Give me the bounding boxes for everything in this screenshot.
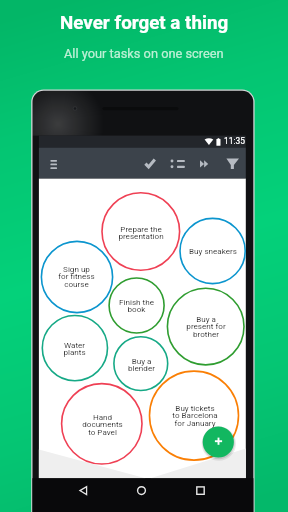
staticText: All your tasks on one screen xyxy=(64,46,224,61)
staticText: Buy sneakers xyxy=(189,246,237,255)
button[interactable]: Add task xyxy=(202,426,234,458)
button[interactable]: Skip xyxy=(202,153,220,171)
button[interactable]: Buy a present for brother xyxy=(167,288,244,365)
staticText: Finish the book xyxy=(119,297,154,314)
staticText: Hand documents to Pavel xyxy=(82,412,123,437)
button[interactable]: Finish the book xyxy=(109,278,164,333)
button[interactable]: Buy a blender xyxy=(114,337,168,391)
staticText: Prepare the presentation xyxy=(118,224,164,241)
staticText: Sign up for fitness course xyxy=(58,264,95,289)
staticText: Never forget a thing xyxy=(60,12,229,34)
button[interactable]: Home xyxy=(132,481,152,500)
staticText: 11:35 xyxy=(224,136,245,146)
button[interactable]: Back xyxy=(74,481,94,500)
button[interactable]: List view xyxy=(170,153,190,171)
staticText: Buy a present for brother xyxy=(186,314,226,339)
button[interactable]: Prepare the presentation xyxy=(102,193,180,271)
button[interactable]: Buy tickets to Barcelona for January xyxy=(150,371,239,460)
staticText: Water plants xyxy=(63,340,86,357)
button[interactable]: Sign up for fitness course xyxy=(41,241,112,312)
button[interactable]: Recents xyxy=(191,481,211,500)
staticText: Buy a blender xyxy=(128,356,155,373)
staticText: Buy tickets to Barcelona for January xyxy=(172,403,218,428)
button[interactable]: Buy sneakers xyxy=(180,218,245,283)
button[interactable]: Menu xyxy=(46,153,62,169)
button[interactable]: Hand documents to Pavel xyxy=(62,384,142,464)
button[interactable]: Mark done xyxy=(143,153,161,171)
button[interactable]: Water plants xyxy=(42,316,107,381)
button[interactable]: Filter xyxy=(224,153,242,171)
